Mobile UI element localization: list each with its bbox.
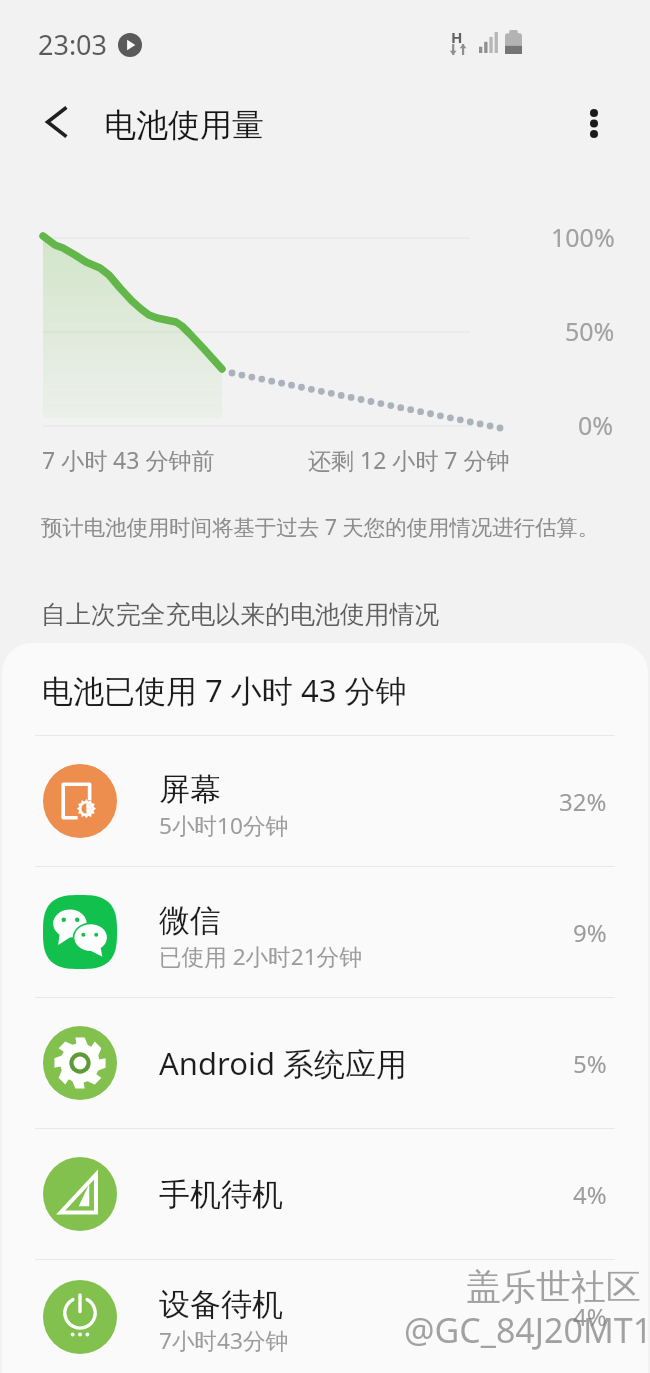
staticText: 微信 bbox=[159, 901, 221, 940]
button[interactable]: More options bbox=[564, 93, 624, 153]
staticText: 设备待机 bbox=[159, 1285, 283, 1324]
staticText: 自上次完全充电以来的电池使用情况 bbox=[41, 599, 440, 630]
staticText: 100% bbox=[551, 220, 615, 254]
staticText: @GC_84J20MT1 bbox=[404, 1307, 650, 1353]
staticText: 9% bbox=[573, 916, 607, 949]
button[interactable]: 手机待机 bbox=[2, 1129, 648, 1259]
staticText: H bbox=[451, 27, 463, 47]
staticText: 5% bbox=[573, 1047, 607, 1080]
staticText: 5小时10分钟 bbox=[159, 810, 289, 841]
button[interactable]: Android 系统应用 bbox=[2, 998, 648, 1128]
staticText: 4% bbox=[573, 1300, 607, 1333]
staticText: 0% bbox=[578, 408, 614, 442]
staticText: 4% bbox=[573, 1178, 607, 1211]
staticText: 还剩 12 小时 7 分钟 bbox=[308, 444, 510, 475]
button[interactable]: 微信 bbox=[2, 867, 648, 997]
staticText: 32% bbox=[559, 785, 607, 818]
staticText: 7小时43分钟 bbox=[159, 1325, 289, 1356]
staticText: 50% bbox=[565, 314, 615, 348]
staticText: 电池已使用 7 小时 43 分钟 bbox=[42, 669, 407, 711]
staticText: 预计电池使用时间将基于过去 7 天您的使用情况进行估算。 bbox=[41, 512, 600, 541]
staticText: 屏幕 bbox=[159, 770, 221, 809]
staticText: 手机待机 bbox=[159, 1175, 283, 1214]
button[interactable]: 设备待机 bbox=[2, 1260, 648, 1373]
staticText: 7 小时 43 分钟前 bbox=[42, 444, 215, 475]
staticText: 23:03 bbox=[38, 26, 108, 63]
staticText: 盖乐世社区 bbox=[466, 1265, 641, 1309]
button[interactable]: Back bbox=[26, 92, 86, 152]
button[interactable]: 屏幕 bbox=[2, 736, 648, 866]
staticText: 已使用 2小时21分钟 bbox=[159, 941, 362, 972]
staticText: 电池使用量 bbox=[104, 105, 264, 145]
staticText: Android 系统应用 bbox=[159, 1042, 408, 1084]
